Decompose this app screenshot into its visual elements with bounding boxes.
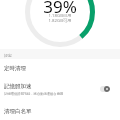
staticText: 清理白名單: [4, 108, 32, 115]
staticText: 39%: [43, 0, 77, 18]
staticText: 記憶體低於30%時，將自動清理後台應用: [4, 91, 64, 96]
button[interactable]: 清理白名單: [0, 100, 120, 120]
button[interactable]: Toggle memory boost: [100, 86, 110, 92]
button[interactable]: 定時清理: [0, 59, 120, 78]
staticText: 1.18GB已用: [48, 12, 72, 18]
staticText: 設定: [4, 53, 12, 58]
button[interactable]: 記憶體加速: [0, 78, 120, 100]
staticText: 記憶體加速: [4, 83, 32, 90]
staticText: 定時清理: [4, 65, 26, 72]
staticText: 1.82GB可用: [48, 17, 72, 23]
